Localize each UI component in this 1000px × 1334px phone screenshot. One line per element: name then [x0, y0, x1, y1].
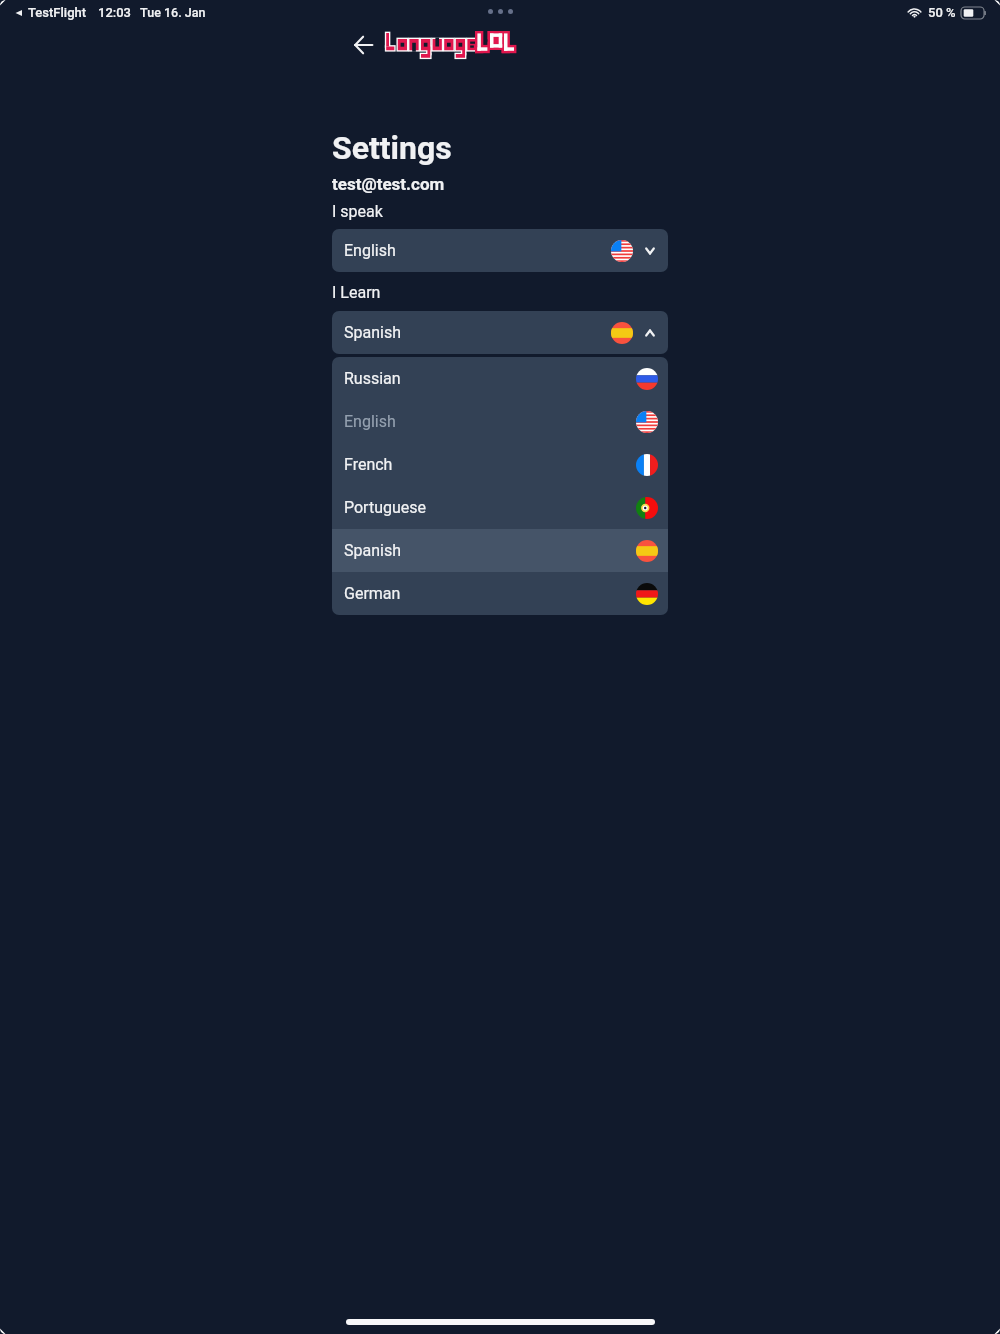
- button[interactable]: Spanish: [332, 311, 668, 354]
- button[interactable]: Portuguese: [332, 486, 668, 529]
- staticText: Portuguese: [344, 498, 427, 517]
- button[interactable]: English: [332, 400, 668, 443]
- button[interactable]: Back: [344, 30, 383, 59]
- staticText: 50 %: [928, 5, 956, 20]
- staticText: test@test.com: [332, 174, 445, 194]
- staticText: I Learn: [332, 283, 381, 302]
- staticText: German: [344, 584, 401, 603]
- button[interactable]: Spanish: [332, 529, 668, 572]
- staticText: Russian: [344, 369, 401, 388]
- staticText: 12:03: [98, 5, 132, 20]
- button[interactable]: French: [332, 443, 668, 486]
- button[interactable]: Russian: [332, 357, 668, 400]
- staticText: Spanish: [344, 323, 401, 342]
- button[interactable]: German: [332, 572, 668, 615]
- staticText: I speak: [332, 202, 383, 221]
- staticText: Spanish: [344, 541, 401, 560]
- staticText: Settings: [332, 129, 452, 167]
- staticText: English: [344, 241, 396, 260]
- staticText: French: [344, 455, 393, 474]
- staticText: English: [344, 412, 396, 431]
- staticText: TestFlight: [28, 5, 87, 20]
- button[interactable]: LanguageLOL home: [384, 33, 524, 67]
- staticText: Tue 16. Jan: [140, 5, 206, 20]
- button[interactable]: English: [332, 229, 668, 272]
